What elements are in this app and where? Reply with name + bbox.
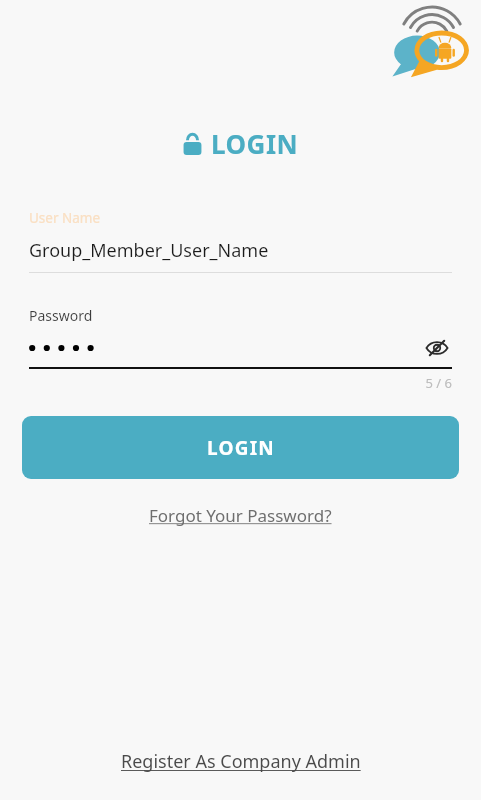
staticText: LOGIN — [207, 435, 275, 461]
staticText: User Name — [29, 209, 101, 227]
staticText: Register As Company Admin — [121, 749, 361, 774]
staticText: Forgot Your Password? — [149, 504, 332, 527]
button[interactable]: Register As Company Admin — [113, 745, 369, 778]
staticText: LOGIN — [211, 126, 299, 161]
button[interactable]: LOGIN — [22, 416, 459, 479]
button[interactable]: Hide password — [422, 337, 452, 359]
other: App logo — [388, 2, 476, 86]
button[interactable]: Forgot Your Password? — [141, 500, 340, 531]
staticText: 5 / 6 — [29, 374, 452, 392]
staticText: Group_Member_User_Name — [29, 238, 269, 263]
staticText: Password — [29, 306, 93, 325]
